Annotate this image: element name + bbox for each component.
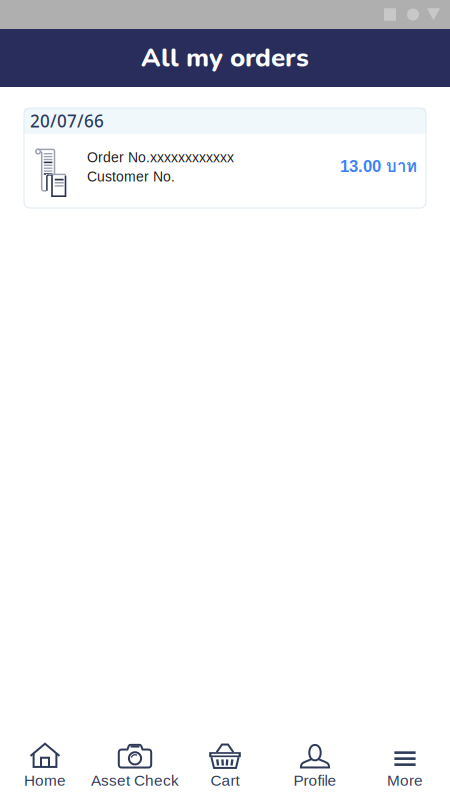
staticText: More	[387, 772, 423, 789]
staticText: Profile	[293, 772, 336, 789]
button[interactable]: Cart	[180, 740, 270, 798]
staticText: Order No.xxxxxxxxxxxx	[87, 150, 234, 165]
staticText: Asset Check	[91, 772, 179, 789]
staticText: 13.00 บาท	[340, 153, 417, 179]
staticText: 20/07/66	[30, 109, 104, 133]
button[interactable]: Asset Check	[90, 740, 180, 798]
button[interactable]: Profile	[270, 740, 360, 798]
staticText: Home	[24, 772, 66, 789]
button[interactable]: Home	[0, 740, 90, 798]
button[interactable]: More	[360, 740, 450, 798]
button[interactable]: 20/07/66	[24, 108, 426, 208]
staticText: All my orders	[141, 40, 309, 76]
staticText: Customer No.	[87, 169, 175, 184]
staticText: Cart	[210, 772, 239, 789]
